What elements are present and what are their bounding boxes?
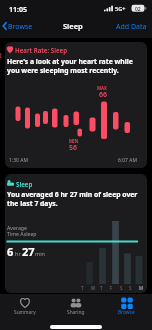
staticText: MIN (69, 138, 79, 144)
button[interactable]: Summary (0, 297, 50, 321)
staticText: W (91, 285, 96, 291)
button[interactable]: Browse (101, 297, 152, 321)
staticText: you were sleeping most recently. (7, 66, 119, 75)
staticText: You averaged 6 hr 27 min of sleep over (7, 190, 138, 199)
staticText: T (100, 285, 103, 291)
staticText: 6:07 AM (118, 157, 137, 164)
staticText: Here's a look at your heart rate while (7, 57, 133, 66)
staticText: Sharing (67, 309, 85, 316)
button[interactable]: Browse (3, 20, 37, 34)
staticText: T (81, 285, 84, 291)
staticText: min (35, 250, 45, 257)
staticText: S (129, 285, 132, 291)
button[interactable] (5, 42, 147, 168)
staticText: 1:30 AM (9, 157, 28, 164)
staticText: MAX (97, 85, 107, 91)
staticText: M (139, 285, 143, 291)
button[interactable]: Add Data (116, 20, 150, 34)
staticText: Summary (14, 309, 36, 316)
staticText: 56 (69, 143, 78, 153)
button[interactable] (5, 174, 147, 293)
staticText: Time Asleep (7, 230, 37, 237)
staticText: Sleep (63, 21, 83, 31)
staticText: 5G+ (115, 5, 126, 12)
staticText: Heart Rate: Sleep (15, 46, 68, 54)
button[interactable]: Sharing (50, 297, 101, 321)
staticText: Sleep (16, 180, 33, 188)
staticText: 6 (7, 244, 14, 259)
staticText: 66 (99, 90, 108, 100)
staticText: Browse (8, 22, 33, 32)
staticText: 02 (135, 6, 141, 13)
staticText: F (110, 285, 113, 291)
staticText: 11:05 (9, 5, 27, 15)
staticText: Add Data (116, 22, 147, 32)
staticText: Average (7, 224, 27, 231)
staticText: hr (15, 250, 21, 257)
staticText: the last 7 days. (7, 199, 58, 208)
staticText: Browse (118, 309, 135, 316)
staticText: S (120, 285, 123, 291)
staticText: 27 (22, 244, 35, 259)
